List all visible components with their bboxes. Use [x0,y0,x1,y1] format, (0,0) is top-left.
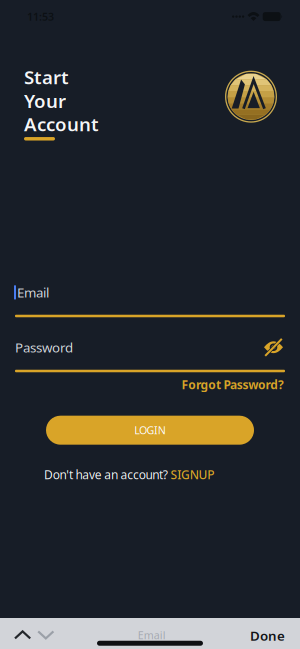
button[interactable]: SIGNUP [170,467,214,483]
staticText: Done [250,627,285,644]
staticText: Account [24,111,99,136]
staticText: Don't have an account? [44,467,170,483]
button[interactable]: Forgot Password? [181,377,284,393]
staticText: Your [24,88,66,113]
button[interactable]: Show password [264,338,283,356]
button[interactable]: LOGIN [46,416,254,445]
staticText: 11:53 [27,9,54,24]
button[interactable]: Done [250,626,285,644]
button[interactable]: Email [0,283,300,317]
button[interactable]: Previous field [15,631,30,639]
staticText: LOGIN [134,423,166,437]
staticText: Start [24,65,69,89]
button[interactable]: Password [0,338,300,372]
staticText: Email [17,283,49,301]
button[interactable]: Next field [38,631,53,639]
staticText: Forgot Password? [181,377,284,393]
staticText: Email [138,628,166,642]
staticText: SIGNUP [170,467,214,483]
staticText: Password [15,338,73,356]
